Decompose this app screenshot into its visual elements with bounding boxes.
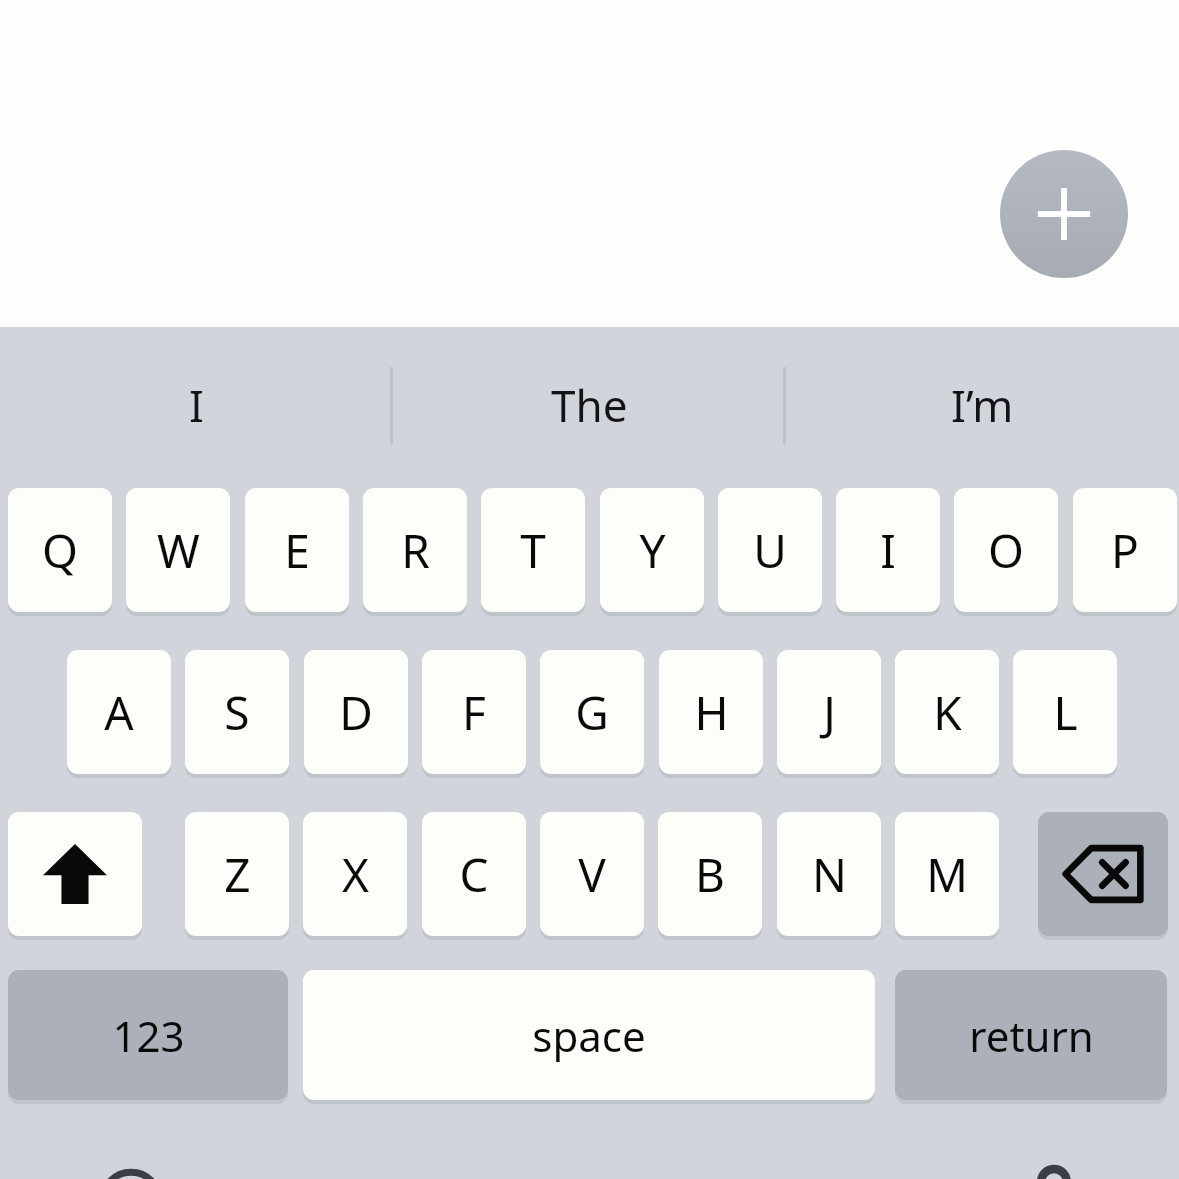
staticText: G: [575, 681, 609, 744]
staticText: D: [339, 681, 373, 744]
staticText: I’m: [951, 375, 1014, 435]
staticText: I: [189, 375, 204, 435]
button[interactable]: I: [836, 488, 940, 612]
button[interactable]: R: [363, 488, 467, 612]
staticText: S: [224, 681, 250, 744]
button[interactable]: 123: [8, 970, 288, 1100]
button[interactable]: S: [185, 650, 289, 774]
button[interactable]: A: [67, 650, 171, 774]
staticText: A: [104, 681, 134, 744]
button[interactable]: space: [303, 970, 875, 1100]
button[interactable]: T: [481, 488, 585, 612]
button[interactable]: Shift: [8, 812, 142, 936]
staticText: W: [157, 519, 200, 582]
staticText: return: [969, 1007, 1094, 1064]
button[interactable]: J: [777, 650, 881, 774]
staticText: K: [933, 681, 962, 744]
button[interactable]: Delete: [1038, 812, 1168, 936]
staticText: I: [880, 519, 896, 582]
button[interactable]: Dictate: [1026, 1164, 1082, 1179]
button[interactable]: D: [304, 650, 408, 774]
button[interactable]: U: [718, 488, 822, 612]
staticText: J: [823, 681, 836, 744]
staticText: T: [520, 519, 546, 582]
staticText: V: [578, 843, 606, 906]
button[interactable]: F: [422, 650, 526, 774]
staticText: L: [1053, 681, 1078, 744]
button[interactable]: L: [1013, 650, 1117, 774]
button[interactable]: O: [954, 488, 1058, 612]
staticText: P: [1111, 519, 1139, 582]
staticText: B: [695, 843, 725, 906]
staticText: N: [812, 843, 847, 906]
button[interactable]: P: [1073, 488, 1177, 612]
staticText: F: [462, 681, 486, 744]
button[interactable]: Z: [185, 812, 289, 936]
staticText: R: [401, 519, 430, 582]
button[interactable]: K: [895, 650, 999, 774]
staticText: The: [551, 375, 628, 435]
staticText: H: [694, 681, 729, 744]
staticText: E: [284, 519, 310, 582]
button[interactable]: E: [245, 488, 349, 612]
button[interactable]: H: [659, 650, 763, 774]
button[interactable]: G: [540, 650, 644, 774]
button[interactable]: Add: [1000, 150, 1128, 278]
button[interactable]: return: [895, 970, 1167, 1100]
button[interactable]: Y: [600, 488, 704, 612]
button[interactable]: X: [303, 812, 407, 936]
button[interactable]: Q: [8, 488, 112, 612]
button[interactable]: V: [540, 812, 644, 936]
staticText: C: [459, 843, 489, 906]
button[interactable]: B: [658, 812, 762, 936]
button[interactable]: Emoji: [99, 1169, 163, 1179]
button[interactable]: W: [126, 488, 230, 612]
staticText: O: [988, 519, 1024, 582]
staticText: space: [532, 1007, 646, 1064]
staticText: 123: [112, 1007, 185, 1064]
staticText: Y: [639, 519, 666, 582]
staticText: X: [342, 843, 369, 906]
button[interactable]: N: [777, 812, 881, 936]
staticText: U: [753, 519, 787, 582]
staticText: Q: [42, 519, 78, 582]
button[interactable]: M: [895, 812, 999, 936]
button[interactable]: The: [393, 337, 786, 473]
staticText: Z: [224, 843, 251, 906]
button[interactable]: C: [422, 812, 526, 936]
staticText: M: [926, 843, 968, 906]
button[interactable]: I: [0, 337, 393, 473]
button[interactable]: I’m: [786, 337, 1179, 473]
